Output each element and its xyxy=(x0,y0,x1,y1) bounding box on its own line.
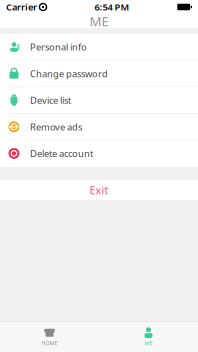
staticText: Remove ads xyxy=(30,121,82,133)
staticText: HOME xyxy=(41,340,57,347)
button[interactable]: Change password xyxy=(0,61,198,87)
staticText: 6:54 PM xyxy=(95,1,130,13)
staticText: ME xyxy=(89,12,108,30)
button[interactable]: Device list xyxy=(0,87,198,114)
staticText: Change password xyxy=(30,67,108,80)
staticText: Exit xyxy=(89,183,108,197)
button[interactable]: Remove ads xyxy=(0,114,198,140)
staticText: Device list xyxy=(30,94,71,106)
button[interactable]: HOME xyxy=(0,322,99,352)
button[interactable]: ME xyxy=(99,322,198,352)
staticText: ME xyxy=(144,340,152,347)
staticText: Personal info xyxy=(30,41,87,53)
button[interactable]: Personal info xyxy=(0,34,198,61)
button[interactable]: Delete account xyxy=(0,140,198,167)
button[interactable]: Exit xyxy=(0,180,198,200)
staticText: Carrier xyxy=(6,1,37,13)
staticText: Delete account xyxy=(30,147,93,160)
staticText xyxy=(37,1,39,13)
